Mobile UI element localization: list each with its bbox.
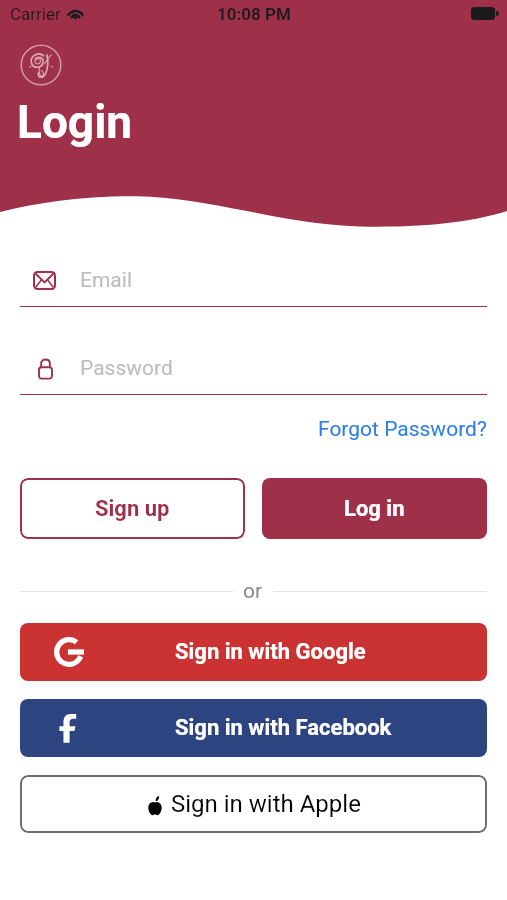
staticText: Log in (344, 496, 405, 522)
button[interactable]: Log in (262, 478, 487, 539)
staticText: Sign in with Facebook (175, 715, 392, 741)
other: Facebook (54, 713, 84, 743)
button[interactable]: Sign in with Google (20, 623, 487, 681)
staticText: Email (80, 268, 132, 293)
other: Google (54, 637, 84, 667)
staticText: Login (17, 95, 133, 149)
staticText: 10:08 PM (217, 4, 291, 24)
staticText: Carrier (10, 4, 61, 24)
staticText: Sign up (95, 496, 170, 522)
other: Battery (471, 7, 500, 20)
staticText: Sign in with Apple (171, 790, 361, 818)
staticText: Password (80, 356, 173, 381)
button[interactable]: Forgot Password? (316, 412, 489, 447)
button[interactable]: App logo (20, 44, 62, 86)
button[interactable]: Sign in with Apple (20, 775, 487, 833)
button[interactable]: Sign up (20, 478, 245, 539)
staticText: or (243, 579, 263, 604)
staticText: Sign in with Google (175, 639, 366, 665)
button[interactable]: Password (20, 351, 487, 385)
staticText: Forgot Password? (318, 417, 487, 442)
button[interactable]: Sign in with Facebook (20, 699, 487, 757)
button[interactable]: Email (20, 263, 487, 297)
